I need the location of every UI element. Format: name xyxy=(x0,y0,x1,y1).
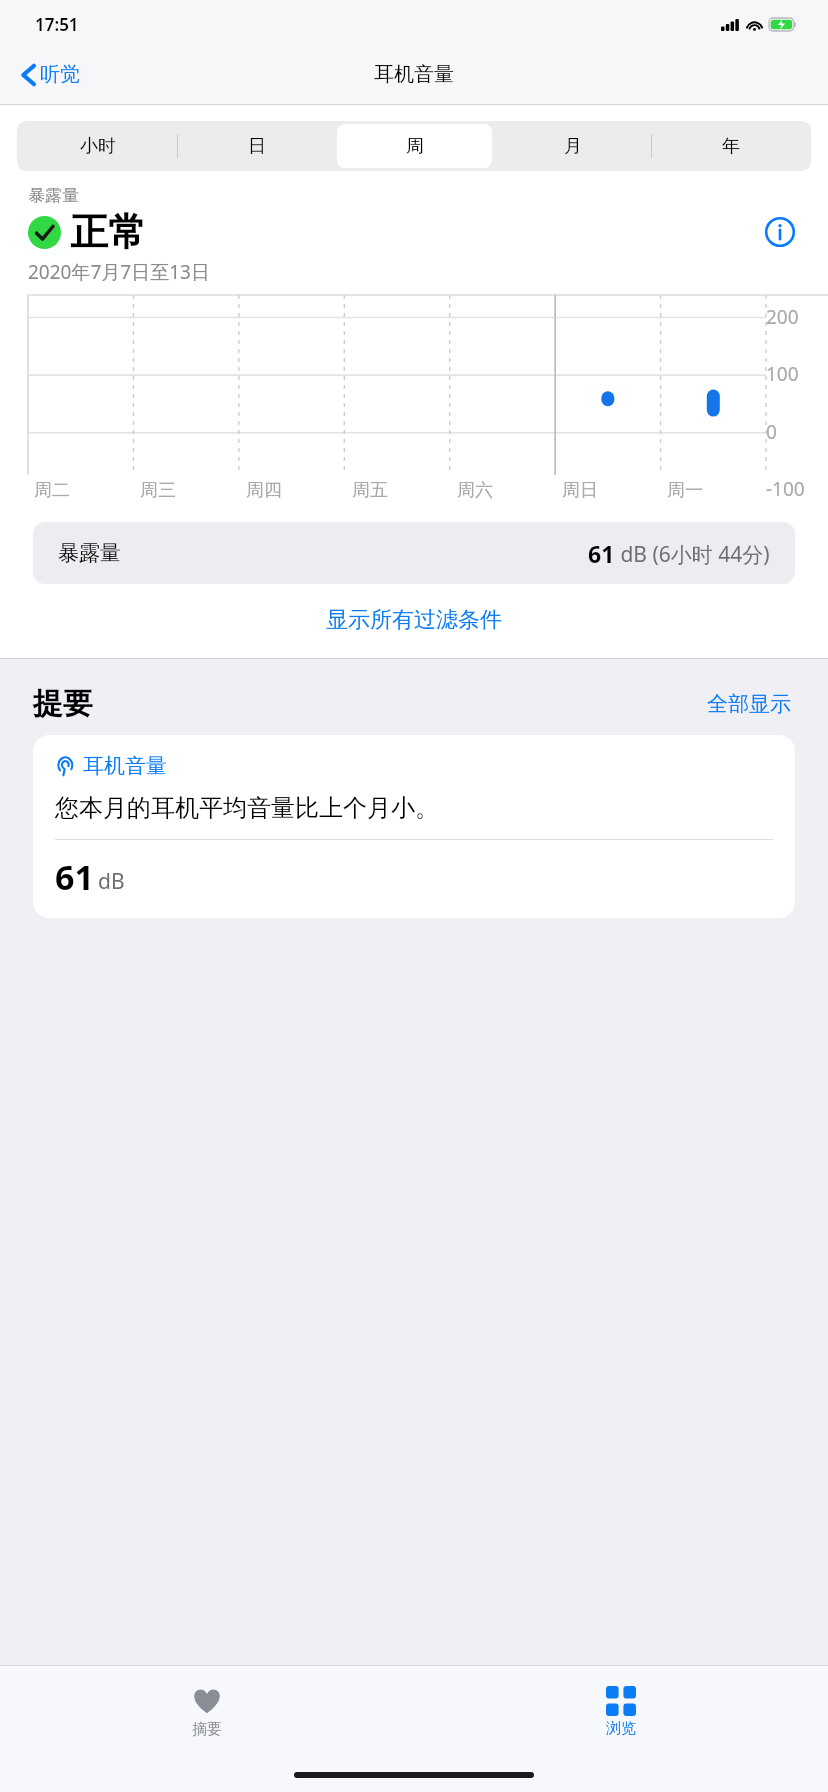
staticText: dB xyxy=(98,867,125,896)
staticText: 周日 xyxy=(562,479,598,502)
button[interactable]: 小时 xyxy=(20,124,176,168)
button[interactable]: 月 xyxy=(495,124,650,168)
button[interactable]: 周 xyxy=(337,124,492,168)
staticText: 周五 xyxy=(352,479,388,502)
staticText: 100 xyxy=(766,361,820,387)
staticText: 耳机音量 xyxy=(374,62,454,87)
staticText: 提要 xyxy=(33,685,93,723)
staticText: 周 xyxy=(406,135,424,158)
staticText: 周二 xyxy=(34,479,70,502)
staticText: 全部显示 xyxy=(707,691,791,717)
staticText: dB (6小时 44分) xyxy=(615,540,770,569)
button[interactable]: 暴露量 xyxy=(33,522,795,584)
button[interactable]: 信息 xyxy=(760,212,800,252)
staticText: 17:51 xyxy=(35,13,79,36)
staticText: 暴露量 xyxy=(28,185,79,206)
staticText: 小时 xyxy=(80,135,116,158)
button[interactable]: 听觉 xyxy=(16,56,86,93)
staticText: 月 xyxy=(564,135,582,158)
staticText: 周四 xyxy=(246,479,282,502)
staticText: 暴露量 xyxy=(58,540,121,566)
staticText: 浏览 xyxy=(606,1719,636,1738)
staticText: 正常 xyxy=(70,208,146,256)
staticText: 您本月的耳机平均音量比上个月小。 xyxy=(55,793,439,823)
staticText: 年 xyxy=(722,135,740,158)
staticText: 0 xyxy=(766,419,820,445)
staticText: 61 xyxy=(588,538,615,569)
staticText: 周三 xyxy=(140,479,176,502)
staticText: 周一 xyxy=(667,479,703,502)
staticText: 2020年7月7日至13日 xyxy=(28,259,210,285)
staticText: 摘要 xyxy=(192,1720,222,1739)
button[interactable]: 年 xyxy=(653,124,808,168)
staticText: 听觉 xyxy=(40,62,80,87)
staticText: 显示所有过滤条件 xyxy=(326,606,502,634)
staticText: -100 xyxy=(766,476,820,502)
button[interactable]: 日 xyxy=(179,124,334,168)
button[interactable]: 全部显示 xyxy=(703,687,795,721)
staticText: 周六 xyxy=(457,479,493,502)
staticText: 61 xyxy=(55,854,94,900)
button[interactable]: 耳机音量 xyxy=(33,735,795,918)
button[interactable]: 浏览 xyxy=(414,1666,828,1758)
button[interactable]: 摘要 xyxy=(0,1666,414,1758)
staticText: 耳机音量 xyxy=(83,753,167,779)
staticText: 日 xyxy=(248,135,266,158)
button[interactable]: 显示所有过滤条件 xyxy=(306,600,522,640)
staticText: 200 xyxy=(766,304,820,330)
